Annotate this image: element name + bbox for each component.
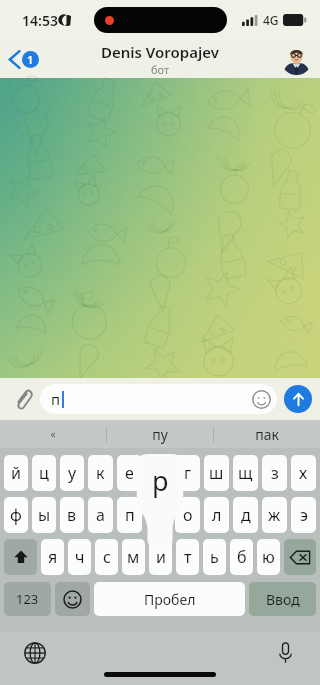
button[interactable]: Switch keyboard language <box>20 638 50 668</box>
button[interactable]: ж <box>262 497 287 533</box>
staticText: п <box>51 389 61 409</box>
button[interactable]: д <box>233 497 258 533</box>
staticText: в <box>67 504 77 526</box>
staticText: х <box>299 462 308 484</box>
staticText: ц <box>39 462 49 484</box>
button[interactable]: Emoji <box>251 389 272 410</box>
button[interactable]: ь <box>203 539 226 575</box>
staticText: г <box>184 462 192 484</box>
button[interactable]: пу <box>107 420 213 448</box>
button[interactable]: б <box>230 539 253 575</box>
button[interactable]: у <box>60 455 84 491</box>
button[interactable]: Send message <box>284 385 312 413</box>
staticText: 123 <box>16 590 39 608</box>
staticText: д <box>241 504 251 526</box>
staticText: ы <box>38 504 51 526</box>
button[interactable]: пак <box>214 420 320 448</box>
staticText: Denis Voropajev <box>101 42 219 62</box>
staticText: о <box>183 504 193 526</box>
button[interactable]: Пробел <box>94 582 245 616</box>
staticText: ю <box>262 546 275 568</box>
button[interactable]: Voice dictation <box>270 638 300 668</box>
button[interactable]: к <box>88 455 113 491</box>
staticText: 14:53 <box>22 11 58 30</box>
button[interactable]: Emoji keyboard <box>55 582 90 616</box>
button[interactable]: ы <box>32 497 56 533</box>
staticText: б <box>237 546 247 568</box>
staticText: ч <box>75 546 85 568</box>
staticText: пак <box>255 425 279 444</box>
button[interactable] <box>146 455 171 491</box>
button[interactable] <box>146 497 171 533</box>
staticText: к <box>96 462 105 484</box>
button[interactable]: « <box>0 420 106 448</box>
staticText: у <box>68 462 77 484</box>
button[interactable]: и <box>149 539 172 575</box>
button[interactable]: а <box>88 497 113 533</box>
button[interactable]: л <box>204 497 229 533</box>
staticText: р <box>152 462 169 499</box>
button[interactable]: т <box>176 539 199 575</box>
staticText: 1 <box>27 52 34 67</box>
button[interactable]: е <box>117 455 142 491</box>
button[interactable]: г <box>175 455 200 491</box>
button[interactable]: щ <box>233 455 258 491</box>
staticText: щ <box>238 462 253 484</box>
button[interactable]: й <box>4 455 28 491</box>
button[interactable]: Ввод <box>249 582 316 616</box>
button[interactable]: Profile photo <box>281 44 312 75</box>
staticText: ж <box>268 504 281 526</box>
staticText: Пробел <box>144 590 196 609</box>
staticText: и <box>156 546 166 568</box>
staticText: п <box>125 504 135 526</box>
button[interactable]: м <box>122 539 145 575</box>
staticText: я <box>48 546 58 568</box>
staticText: м <box>127 546 140 568</box>
button[interactable]: Back, 1 unread chat <box>0 46 47 73</box>
staticText: е <box>125 462 134 484</box>
staticText: 4G <box>263 12 279 28</box>
button[interactable]: з <box>262 455 287 491</box>
staticText: ь <box>210 546 219 568</box>
button[interactable]: ф <box>4 497 28 533</box>
button[interactable]: Attach file <box>8 384 38 414</box>
button[interactable]: 123 <box>4 582 51 616</box>
staticText: л <box>212 504 222 526</box>
staticText: й <box>11 462 21 484</box>
button[interactable]: ш <box>204 455 229 491</box>
button[interactable]: Denis Voropajev <box>101 42 219 77</box>
staticText: с <box>103 546 111 568</box>
staticText: « <box>50 427 56 441</box>
button[interactable]: э <box>291 497 316 533</box>
button[interactable]: в <box>60 497 84 533</box>
staticText: пу <box>152 425 168 444</box>
staticText: т <box>184 546 192 568</box>
staticText: Ввод <box>266 590 300 609</box>
button[interactable]: п <box>117 497 142 533</box>
button[interactable]: х <box>291 455 316 491</box>
staticText: а <box>96 504 105 526</box>
button[interactable]: п <box>40 384 277 414</box>
button[interactable]: с <box>95 539 118 575</box>
button[interactable]: ч <box>68 539 91 575</box>
staticText: э <box>300 504 308 526</box>
button[interactable]: Backspace <box>284 539 316 575</box>
button[interactable]: ю <box>257 539 280 575</box>
button[interactable]: Shift <box>4 539 37 575</box>
button[interactable]: я <box>41 539 64 575</box>
staticText: ф <box>10 504 22 526</box>
staticText: ш <box>209 462 224 484</box>
button[interactable]: ц <box>32 455 56 491</box>
staticText: з <box>271 462 279 484</box>
staticText: бот <box>151 62 170 77</box>
button[interactable]: о <box>175 497 200 533</box>
